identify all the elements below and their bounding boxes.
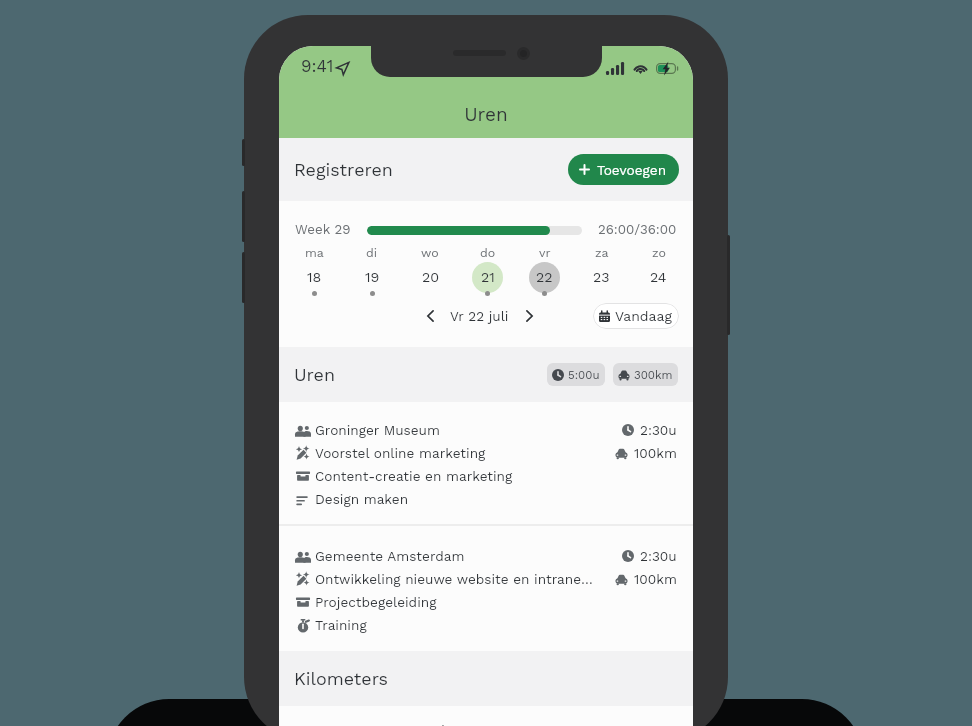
staticText: 23 [593,269,610,286]
staticText: 18 [307,269,322,286]
button[interactable]: zo [630,245,687,301]
staticText: di [366,245,378,260]
button[interactable]: wo [401,245,459,301]
button[interactable]: 300km [613,363,678,386]
staticText: Week 29 [295,222,351,238]
staticText: 21 [481,269,495,286]
staticText: 24 [650,269,667,286]
staticText: za [595,245,609,260]
staticText: 100km [634,445,677,461]
button[interactable]: Volgende dag [516,303,542,329]
button[interactable]: Gemeente Amsterdam [279,526,693,651]
staticText: 5:00u [568,368,600,381]
button[interactable]: Vandaag [593,303,679,329]
staticText: Gemeente Amsterdam [315,548,465,564]
staticText: Design maken [315,491,409,507]
staticText: zo [652,245,666,260]
staticText: wo [421,245,439,260]
staticText: Uren [279,103,693,125]
staticText: 9:41 [301,56,334,76]
button[interactable]: di [343,245,401,301]
staticText: 300km [634,368,673,381]
button[interactable]: vr [516,245,573,301]
button[interactable]: Vorige dag [417,303,443,329]
staticText: Uren [294,364,335,385]
staticText: Vr 22 juli [450,308,509,324]
staticText: Voorstel online marketing [315,445,486,461]
staticText: Registreren [294,159,393,180]
staticText: Projectbegeleiding [315,594,437,610]
staticText: Kilometers [294,668,388,689]
button[interactable]: za [573,245,630,301]
staticText: 2:30u [640,548,677,564]
staticText: Vandaag [615,308,672,324]
staticText: do [480,245,496,260]
staticText: 19 [365,269,380,286]
button[interactable]: do [459,245,516,301]
staticText: vr [539,245,551,260]
staticText: 2:30u [640,422,677,438]
staticText: ma [305,245,324,260]
staticText: 26:00/36:00 [598,222,677,238]
staticText: Gemeente Amsterdam [316,722,466,726]
staticText: Ontwikkeling nieuwe website en intrane… [315,571,593,587]
staticText: Training [315,617,367,633]
staticText: Content-creatie en marketing [315,468,513,484]
staticText: Toevoegen [597,162,667,178]
button[interactable]: Groninger Museum [279,402,693,524]
button[interactable]: 5:00u [547,363,605,386]
button[interactable]: Toevoegen [568,154,679,185]
staticText: 100km [634,571,677,587]
button[interactable]: ma [285,245,343,301]
staticText: 22 [536,269,553,286]
staticText: Groninger Museum [315,422,440,438]
staticText: 20 [422,269,440,286]
